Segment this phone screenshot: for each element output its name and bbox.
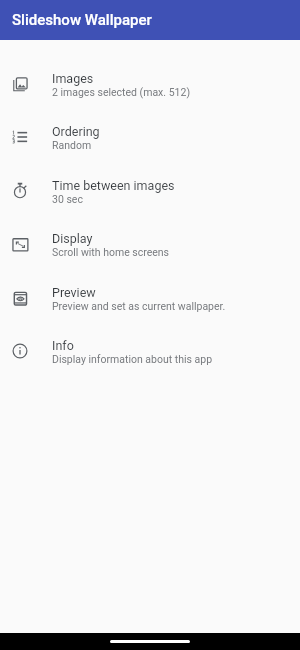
staticText: Scroll with home screens (52, 246, 170, 258)
staticText: Display (52, 231, 93, 246)
staticText: Random (52, 139, 92, 151)
staticText: 12:30 (7, 3, 34, 15)
staticText: Preview (52, 285, 96, 300)
button[interactable]: Images (0, 59, 300, 112)
button[interactable]: Info (0, 326, 300, 379)
staticText: Slideshow Wallpaper (12, 11, 152, 29)
staticText: Images (52, 71, 94, 86)
staticText: Preview and set as current wallpaper. (52, 300, 226, 312)
staticText: Display information about this app (52, 353, 213, 365)
button[interactable]: Ordering (0, 112, 300, 165)
staticText: Time between images (52, 178, 175, 193)
button[interactable]: Display (0, 219, 300, 272)
staticText: 2 images selected (max. 512) (52, 86, 191, 98)
button[interactable]: Time between images (0, 166, 300, 219)
staticText: Info (52, 338, 74, 353)
staticText: 30 sec (52, 193, 83, 205)
button[interactable]: Preview (0, 273, 300, 326)
staticText: Ordering (52, 124, 100, 139)
